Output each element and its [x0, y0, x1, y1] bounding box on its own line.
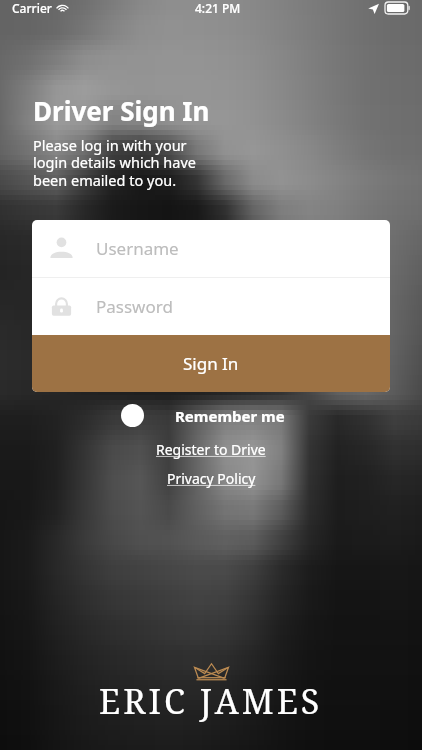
button[interactable]: Sign In	[32, 335, 390, 392]
staticText: 4:21 PM	[195, 0, 241, 16]
button[interactable]: Privacy Policy	[167, 469, 256, 488]
button[interactable]: Register to Drive	[156, 440, 266, 459]
staticText: Register to Drive	[156, 440, 266, 459]
button[interactable]: Username	[32, 220, 390, 277]
staticText: Password	[96, 295, 173, 318]
staticText: Remember me	[175, 406, 285, 426]
button[interactable]: Remember me	[0, 404, 422, 427]
staticText: Privacy Policy	[167, 469, 256, 488]
staticText: Username	[96, 237, 179, 260]
staticText: Driver Sign In	[33, 93, 210, 128]
staticText: Carrier	[12, 0, 52, 16]
staticText: ERIC JAMES	[99, 678, 323, 724]
staticText: Please log in with your login details wh…	[33, 135, 196, 190]
button[interactable]: Password	[32, 278, 390, 335]
staticText: Sign In	[183, 352, 239, 375]
